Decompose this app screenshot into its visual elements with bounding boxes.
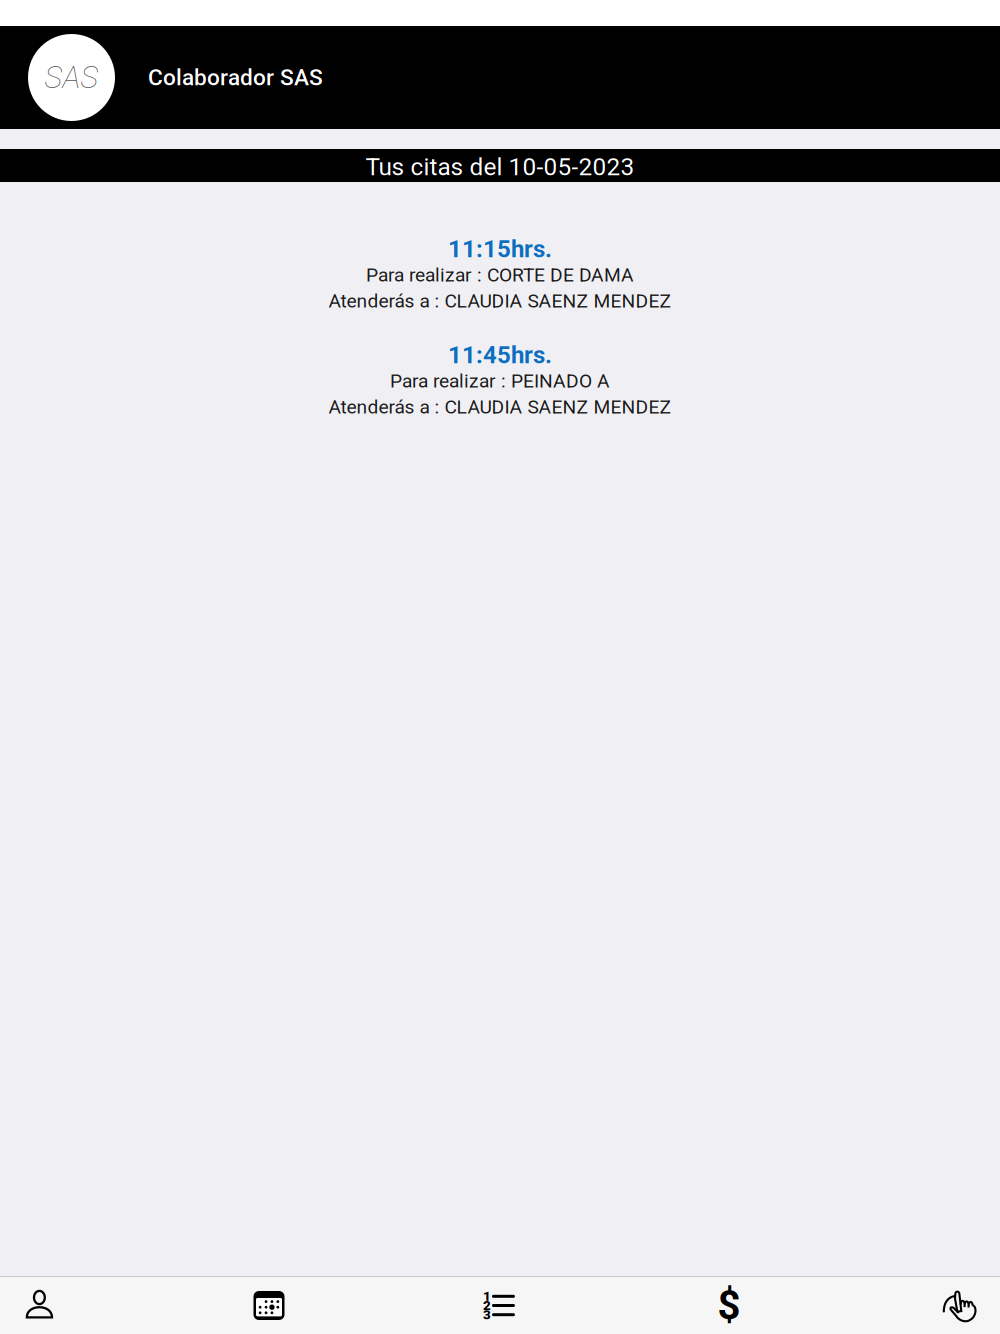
staticText: SAS	[44, 59, 98, 95]
button[interactable]: SAS logo	[28, 34, 115, 121]
staticText: 3	[483, 1307, 491, 1322]
button[interactable]: Servicios	[941, 1286, 979, 1324]
staticText: Para realizar : PEINADO A	[390, 370, 610, 392]
staticText: 2	[483, 1298, 491, 1313]
button[interactable]: Ventas	[711, 1287, 747, 1323]
staticText: Atenderás a : CLAUDIA SAENZ MENDEZ	[328, 290, 671, 312]
staticText: $	[717, 1282, 740, 1329]
staticText: Colaborador SAS	[148, 64, 323, 91]
staticText: Para realizar : CORTE DE DAMA	[366, 264, 634, 286]
staticText: Tus citas del 10-05-2023	[365, 153, 634, 181]
staticText: 11:45hrs.	[448, 341, 552, 369]
button[interactable]: Agenda	[251, 1287, 287, 1323]
staticText: Atenderás a : CLAUDIA SAENZ MENDEZ	[328, 396, 671, 418]
staticText: 1	[483, 1288, 491, 1304]
button[interactable]: Lista	[481, 1287, 517, 1323]
staticText: 11:15hrs.	[448, 235, 552, 263]
button[interactable]: Perfil	[21, 1287, 57, 1323]
